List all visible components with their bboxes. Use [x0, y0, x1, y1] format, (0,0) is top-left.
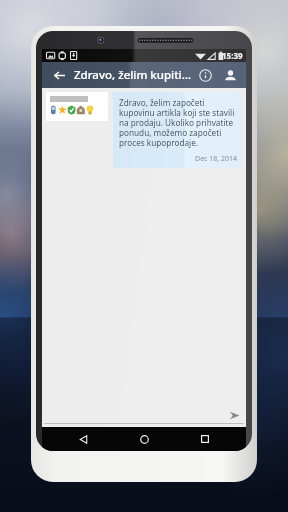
- button[interactable]: Back: [63, 427, 103, 451]
- button[interactable]: Info: [194, 64, 216, 86]
- staticText: 15:39: [222, 50, 243, 61]
- button[interactable]: [46, 92, 108, 121]
- staticText: Zdravo, želim kupiti…: [74, 67, 194, 83]
- button[interactable]: Send: [226, 407, 243, 424]
- staticText: Dec 18, 2014: [195, 154, 237, 164]
- button[interactable]: Profile: [219, 64, 241, 86]
- staticText: Zdravo, želim započeti kupovinu artikla …: [119, 97, 237, 149]
- button[interactable]: Back: [48, 64, 70, 86]
- button[interactable]: Zdravo, želim započeti kupovinu artikla …: [113, 92, 242, 168]
- button[interactable]: Home: [124, 427, 164, 451]
- button[interactable]: Recent apps: [185, 427, 225, 451]
